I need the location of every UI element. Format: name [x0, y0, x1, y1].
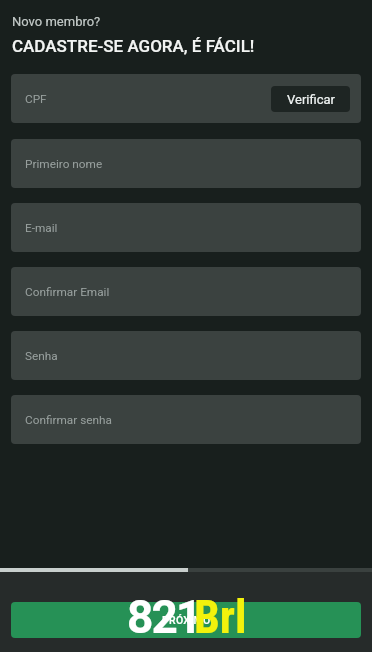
button[interactable]: PRÓXIMO — [11, 602, 361, 638]
staticText: Senha — [25, 349, 58, 363]
staticText: Brl — [194, 590, 247, 644]
staticText: E-mail — [25, 221, 58, 235]
staticText: 821 — [127, 590, 201, 644]
staticText: CPF — [25, 92, 47, 106]
button[interactable]: Senha — [11, 331, 361, 380]
button[interactable]: Confirmar Email — [11, 267, 361, 316]
staticText: Verificar — [287, 92, 335, 107]
staticText: Confirmar senha — [25, 413, 112, 427]
staticText: PRÓXIMO — [162, 614, 211, 626]
button[interactable]: Primeiro nome — [11, 139, 361, 188]
button[interactable]: Confirmar senha — [11, 395, 361, 444]
staticText: CADASTRE-SE AGORA, É FÁCIL! — [12, 36, 255, 56]
button[interactable]: E-mail — [11, 203, 361, 252]
staticText: Confirmar Email — [25, 285, 110, 299]
staticText: Novo membro? — [12, 14, 101, 29]
button[interactable]: CPF — [11, 74, 361, 123]
button[interactable]: Verificar — [271, 86, 350, 112]
staticText: Primeiro nome — [25, 157, 103, 171]
